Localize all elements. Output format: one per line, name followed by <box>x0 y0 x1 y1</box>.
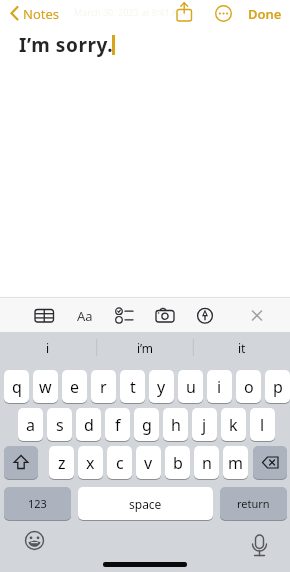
button[interactable]: space <box>78 487 213 520</box>
staticText: Done <box>248 5 282 23</box>
button[interactable]: q <box>4 370 29 403</box>
button[interactable]: j <box>192 408 217 441</box>
button[interactable] <box>114 306 136 325</box>
staticText: x <box>86 452 95 474</box>
staticText: I’m sorry. <box>19 32 114 58</box>
button[interactable]: a <box>18 408 43 441</box>
staticText: March 30, 2023 at 9:41 AM <box>74 6 186 18</box>
staticText: space <box>129 496 162 512</box>
button[interactable]: z <box>49 446 74 479</box>
button[interactable] <box>33 306 55 325</box>
button[interactable] <box>194 306 216 325</box>
staticText: 123 <box>28 496 47 511</box>
staticText: p <box>273 376 283 398</box>
staticText: b <box>173 452 183 474</box>
staticText: y <box>157 376 166 398</box>
button[interactable] <box>24 530 45 551</box>
button[interactable] <box>249 533 270 560</box>
staticText: s <box>56 414 64 436</box>
button[interactable]: r <box>91 370 116 403</box>
button[interactable]: u <box>178 370 203 403</box>
staticText: l <box>260 414 265 436</box>
button[interactable] <box>4 446 38 479</box>
button[interactable] <box>247 306 267 325</box>
staticText: z <box>58 452 66 474</box>
button[interactable]: o <box>236 370 261 403</box>
button[interactable]: e <box>62 370 87 403</box>
staticText: return <box>237 496 270 511</box>
staticText: it <box>238 340 246 356</box>
button[interactable]: c <box>107 446 132 479</box>
staticText: a <box>26 414 35 436</box>
staticText: c <box>116 452 124 474</box>
staticText: u <box>186 376 196 398</box>
button[interactable]: Done <box>244 2 286 22</box>
button[interactable]: l <box>250 408 275 441</box>
button[interactable]: y <box>149 370 174 403</box>
button[interactable]: h <box>163 408 188 441</box>
button[interactable] <box>173 1 195 24</box>
button[interactable]: b <box>165 446 190 479</box>
staticText: q <box>12 376 22 398</box>
button[interactable]: Aa <box>76 306 98 325</box>
staticText: r <box>100 376 107 398</box>
button[interactable]: s <box>47 408 72 441</box>
button[interactable]: it <box>194 332 290 363</box>
button[interactable]: w <box>33 370 58 403</box>
staticText: n <box>202 452 212 474</box>
staticText: e <box>70 376 80 398</box>
button[interactable]: i’m <box>97 332 193 363</box>
button[interactable]: i <box>0 332 96 363</box>
button[interactable]: x <box>78 446 103 479</box>
staticText: t <box>130 376 136 398</box>
button[interactable]: n <box>194 446 219 479</box>
staticText: o <box>244 376 254 398</box>
button[interactable]: return <box>220 487 287 520</box>
button[interactable]: d <box>76 408 101 441</box>
button[interactable]: Notes <box>4 2 62 24</box>
staticText: w <box>39 376 52 398</box>
staticText: v <box>144 452 153 474</box>
staticText: k <box>229 414 238 436</box>
staticText: d <box>84 414 94 436</box>
button[interactable]: i <box>207 370 232 403</box>
button[interactable]: g <box>134 408 159 441</box>
staticText: Aa <box>77 307 93 325</box>
staticText: m <box>228 452 243 474</box>
staticText: Notes <box>23 5 59 23</box>
button[interactable] <box>214 4 233 23</box>
button[interactable]: k <box>221 408 246 441</box>
button[interactable] <box>154 306 176 325</box>
button[interactable]: v <box>136 446 161 479</box>
button[interactable] <box>253 446 287 479</box>
button[interactable]: m <box>223 446 248 479</box>
staticText: g <box>142 414 152 436</box>
staticText: i <box>217 376 222 398</box>
button[interactable]: f <box>105 408 130 441</box>
staticText: i <box>46 340 50 356</box>
button[interactable]: p <box>265 370 290 403</box>
staticText: i’m <box>137 340 154 356</box>
staticText: j <box>202 414 207 436</box>
staticText: h <box>171 414 181 436</box>
staticText: f <box>115 414 121 436</box>
button[interactable]: t <box>120 370 145 403</box>
button[interactable]: 123 <box>4 487 71 520</box>
